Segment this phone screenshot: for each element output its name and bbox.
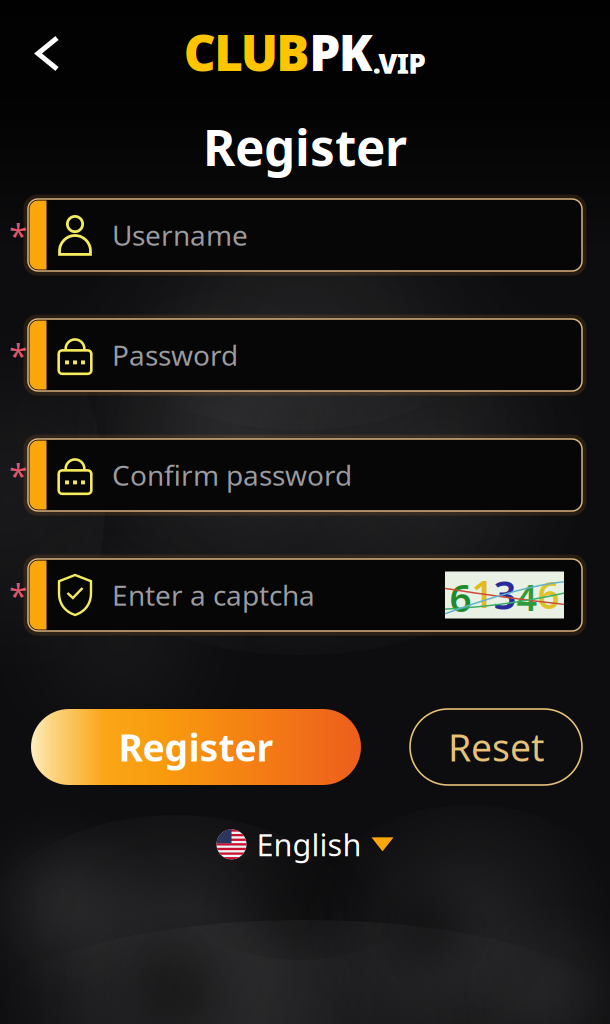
staticText: * <box>9 573 27 617</box>
staticText: * <box>9 333 27 377</box>
staticText: Register <box>203 114 407 179</box>
staticText: Register <box>118 722 273 772</box>
button[interactable]: Back <box>20 20 75 87</box>
staticText: Enter a captcha <box>112 576 315 614</box>
staticText: 4 <box>516 573 537 621</box>
button[interactable]: Reset <box>410 709 582 785</box>
button[interactable]: English <box>216 824 393 865</box>
staticText: * <box>9 453 27 497</box>
staticText: Password <box>112 336 238 374</box>
staticText: .VIP <box>373 44 426 81</box>
staticText: 6 <box>537 568 559 620</box>
staticText: 6 <box>449 571 471 623</box>
staticText: 1 <box>471 567 493 619</box>
staticText: Confirm password <box>112 456 352 494</box>
staticText: Username <box>112 216 248 254</box>
staticText: * <box>9 213 27 257</box>
staticText: 3 <box>493 567 516 620</box>
button[interactable]: Register <box>31 709 361 785</box>
staticText: PK <box>309 19 373 84</box>
staticText: CLUB <box>184 19 309 84</box>
staticText: Reset <box>448 722 544 772</box>
staticText: English <box>256 824 361 865</box>
